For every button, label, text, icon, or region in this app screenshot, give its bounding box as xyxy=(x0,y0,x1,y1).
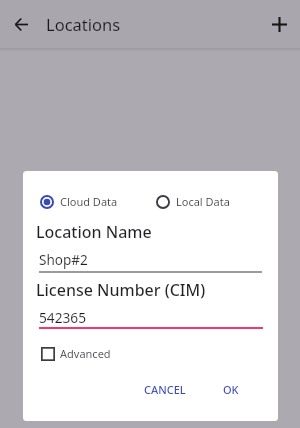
staticText: License Number (CIM) xyxy=(36,279,206,301)
staticText: 542365 xyxy=(39,308,86,327)
button[interactable]: Cloud Data xyxy=(40,194,118,209)
staticText: Advanced xyxy=(60,346,111,361)
staticText: Cloud Data xyxy=(60,194,118,209)
staticText: Locations xyxy=(46,13,121,35)
staticText: OK xyxy=(223,382,239,397)
button[interactable]: Advanced xyxy=(41,346,111,361)
button[interactable]: CANCEL xyxy=(136,376,194,403)
button[interactable]: Local Data xyxy=(156,194,230,209)
button[interactable]: Back xyxy=(5,8,37,40)
button[interactable]: Add location xyxy=(263,8,295,40)
button[interactable]: OK xyxy=(215,376,247,403)
staticText: CANCEL xyxy=(144,382,186,397)
staticText: Local Data xyxy=(176,194,230,209)
staticText: Shop#2 xyxy=(39,251,88,269)
staticText: Location Name xyxy=(36,221,152,243)
